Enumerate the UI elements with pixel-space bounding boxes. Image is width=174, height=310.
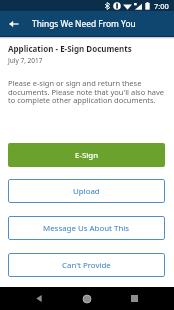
button[interactable]: Back: [0, 11, 28, 36]
button[interactable]: Can't Provide: [8, 253, 165, 277]
staticText: Things We Need From You: [32, 18, 136, 29]
button[interactable]: E-Sign: [8, 143, 165, 167]
button[interactable]: Recents: [122, 287, 146, 310]
button[interactable]: Upload: [8, 179, 165, 203]
staticText: July 7, 2017: [8, 56, 43, 65]
staticText: 7:00: [154, 1, 169, 11]
button[interactable]: Home: [75, 287, 99, 310]
staticText: Application - E-Sign Documents: [8, 43, 132, 54]
staticText: Message Us About This: [43, 223, 130, 234]
staticText: Can't Provide: [62, 260, 111, 271]
staticText: Please e-sign or sign and return these d…: [8, 78, 165, 105]
button[interactable]: Back: [27, 287, 51, 310]
button[interactable]: Message Us About This: [8, 216, 165, 240]
staticText: Upload: [73, 186, 100, 197]
staticText: E-Sign: [75, 150, 99, 161]
